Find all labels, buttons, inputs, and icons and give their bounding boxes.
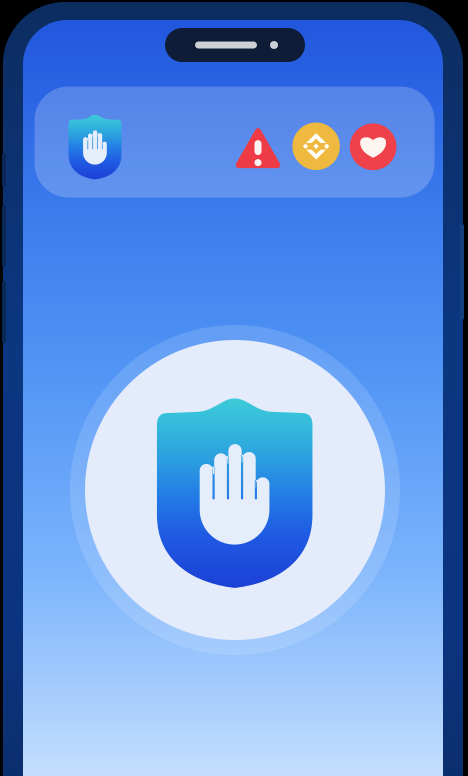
button[interactable]: Shield xyxy=(59,107,131,187)
button[interactable]: Favourite xyxy=(347,121,399,173)
button[interactable]: Warning xyxy=(230,119,286,175)
button[interactable]: Binance xyxy=(290,120,342,172)
